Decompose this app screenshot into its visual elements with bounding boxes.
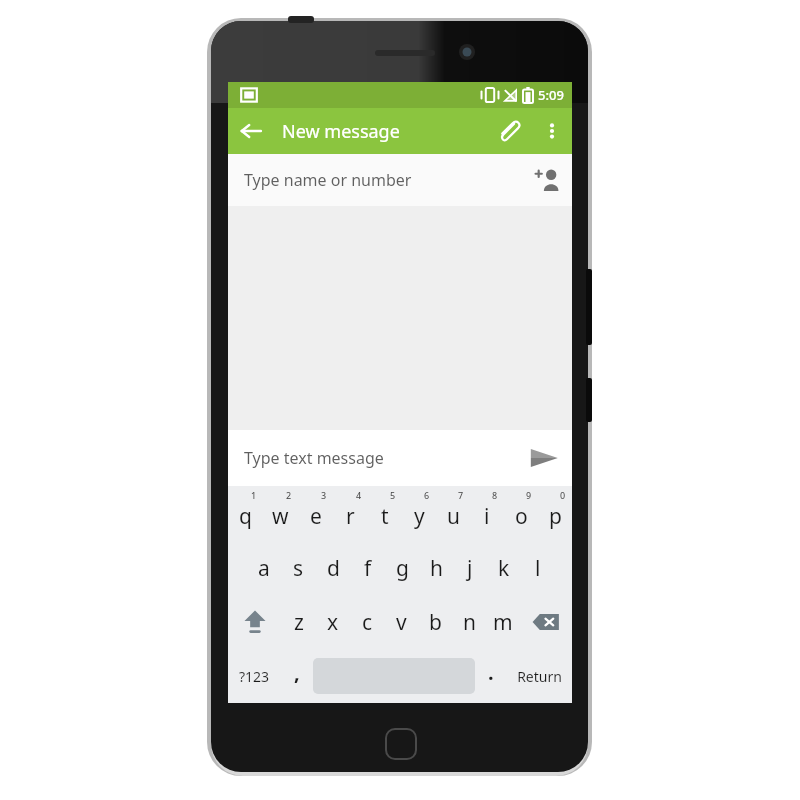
staticText: b <box>429 608 442 637</box>
button[interactable]: Shift <box>228 595 281 649</box>
button[interactable]: 2 <box>263 486 298 541</box>
staticText: 9 <box>526 489 532 501</box>
button[interactable]: More options <box>532 111 572 151</box>
staticText: x <box>327 608 339 637</box>
staticText: r <box>346 502 355 531</box>
staticText: w <box>272 502 289 531</box>
button[interactable]: j <box>453 541 487 595</box>
button[interactable]: . <box>475 649 507 703</box>
button[interactable]: x <box>316 595 350 649</box>
staticText: New message <box>282 119 486 144</box>
staticText: y <box>414 502 425 531</box>
button[interactable]: Type text message <box>244 447 516 469</box>
staticText: 0 <box>560 489 566 501</box>
button[interactable]: , <box>281 649 313 703</box>
staticText: t <box>381 502 389 531</box>
staticText: 5 <box>390 489 396 501</box>
staticText: i <box>484 502 490 531</box>
staticText: 7 <box>458 489 464 501</box>
staticText: 5:09 <box>538 86 564 104</box>
staticText: 8 <box>492 489 498 501</box>
button[interactable]: l <box>521 541 555 595</box>
staticText: 2 <box>286 489 292 501</box>
button[interactable]: d <box>316 541 351 595</box>
staticText: , <box>294 659 300 686</box>
staticText: f <box>364 554 372 583</box>
staticText: o <box>515 502 528 531</box>
staticText: . <box>488 659 494 686</box>
staticText: e <box>310 502 322 531</box>
button[interactable]: 6 <box>402 486 436 541</box>
button[interactable]: 8 <box>470 486 504 541</box>
button[interactable]: Send <box>516 430 572 486</box>
button[interactable]: Return <box>507 649 572 703</box>
button[interactable]: Attach <box>486 108 532 154</box>
button[interactable]: z <box>281 595 316 649</box>
button[interactable]: 3 <box>298 486 333 541</box>
button[interactable]: g <box>385 541 419 595</box>
button[interactable]: Type name or number <box>228 154 572 206</box>
staticText: d <box>327 554 340 583</box>
staticText: 4 <box>356 489 362 501</box>
staticText: p <box>549 502 562 531</box>
button[interactable]: f <box>351 541 385 595</box>
button[interactable]: s <box>281 541 316 595</box>
staticText: j <box>467 554 473 583</box>
button[interactable]: ?123 <box>228 649 281 703</box>
button[interactable]: Back <box>228 108 274 154</box>
button[interactable]: 4 <box>333 486 368 541</box>
button[interactable]: 9 <box>504 486 538 541</box>
staticText: 6 <box>424 489 430 501</box>
staticText: 3 <box>321 489 327 501</box>
button[interactable]: h <box>419 541 453 595</box>
staticText: n <box>463 608 476 637</box>
staticText: h <box>430 554 443 583</box>
button[interactable]: 7 <box>436 486 470 541</box>
button[interactable]: k <box>487 541 521 595</box>
staticText: Return <box>517 667 562 686</box>
staticText: l <box>535 554 541 583</box>
button[interactable]: b <box>418 595 452 649</box>
staticText: m <box>493 608 513 637</box>
button[interactable]: 1 <box>228 486 263 541</box>
staticText: q <box>239 502 252 531</box>
staticText: g <box>396 554 409 583</box>
staticText: 1 <box>251 489 257 501</box>
button[interactable]: a <box>246 541 281 595</box>
staticText: z <box>294 608 304 637</box>
button[interactable]: m <box>486 595 520 649</box>
staticText: ?123 <box>239 667 270 686</box>
staticText: k <box>498 554 510 583</box>
staticText: v <box>396 608 407 637</box>
staticText: u <box>447 502 460 531</box>
button[interactable]: c <box>350 595 384 649</box>
staticText: Type name or number <box>244 169 522 191</box>
staticText: c <box>362 608 373 637</box>
button[interactable]: 0 <box>538 486 572 541</box>
button[interactable]: v <box>384 595 418 649</box>
button[interactable]: 5 <box>368 486 402 541</box>
staticText: s <box>293 554 304 583</box>
button[interactable]: n <box>452 595 486 649</box>
button[interactable]: Backspace <box>520 595 572 649</box>
staticText: a <box>258 554 270 583</box>
button[interactable]: Add contact <box>522 155 572 205</box>
